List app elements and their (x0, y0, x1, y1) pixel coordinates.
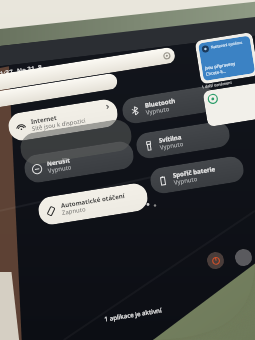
staticText: Zapnuto (61, 205, 86, 217)
button[interactable]: Vypnout (206, 251, 225, 270)
staticText: Sítě jsou k dispozici (31, 116, 87, 133)
staticText: 1 aplikace je aktivní (104, 305, 162, 322)
staticText: Spořič baterie (172, 164, 216, 179)
staticText: Vypnuto (159, 140, 184, 152)
button[interactable]: Internet (6, 98, 119, 142)
button[interactable] (207, 87, 255, 122)
staticText: Svítilna (158, 132, 182, 144)
button[interactable]: Uživatel (234, 248, 253, 267)
staticText: Chcete-li... (205, 68, 227, 78)
staticText: Internet (30, 113, 57, 125)
button[interactable]: Bluetooth (120, 85, 217, 125)
staticText: Vypnuto (47, 163, 72, 175)
staticText: Vypnuto (145, 105, 170, 117)
button[interactable]: Nerušit (22, 140, 135, 184)
button[interactable]: Svítilna (134, 120, 231, 160)
staticText: Nerušit (46, 155, 71, 167)
staticText: Automatické otáčení (60, 191, 126, 209)
staticText: Jsou připraveny (204, 61, 236, 72)
button[interactable] (18, 117, 134, 166)
staticText: Bluetooth (144, 96, 176, 109)
button[interactable]: Hlasitost (0, 72, 118, 111)
staticText: 1 další oznámení (201, 80, 232, 89)
staticText: Nastavení systému (210, 40, 243, 49)
button[interactable]: Automatické otáčení (36, 182, 149, 226)
button[interactable]: Nastavení systému (198, 35, 255, 81)
button[interactable]: Spořič baterie (148, 155, 245, 195)
button[interactable]: Jas (0, 47, 176, 93)
staticText: 21:37 (0, 67, 14, 79)
staticText: Ne 31. 8. (16, 62, 44, 75)
staticText: Vypnuto (173, 175, 198, 187)
